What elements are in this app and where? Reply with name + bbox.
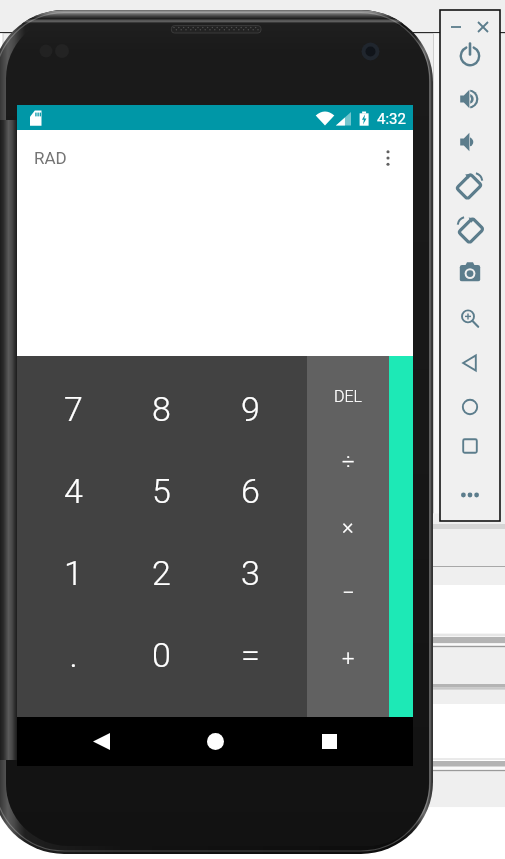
button[interactable]: Power [454,39,486,71]
staticText: 7 [64,389,83,429]
staticText: DEL [334,387,363,406]
staticText: . [69,635,78,675]
button[interactable]: Screenshot [454,256,486,288]
button[interactable]: 7 [29,368,117,450]
button[interactable]: 9 [206,368,295,450]
button[interactable]: Back [454,347,486,379]
button[interactable]: 3 [206,532,295,614]
button[interactable]: = [206,614,295,696]
staticText: RAD [34,148,67,168]
staticText: − [342,580,355,606]
staticText: 1 [64,553,83,593]
staticText: 9 [241,389,260,429]
staticText: 6 [241,471,260,511]
staticText: 2 [152,553,171,593]
button[interactable]: Zoom [454,303,486,335]
button[interactable]: More [454,479,486,511]
button[interactable]: 2 [117,532,206,614]
staticText: 8 [152,389,171,429]
button[interactable]: Overview [454,430,486,462]
staticText: 4:32 [377,110,406,128]
button[interactable]: More options [373,143,403,173]
button[interactable]: Volume down [454,126,486,158]
staticText: ÷ [342,449,355,475]
staticText: × [342,514,354,540]
button[interactable]: 0 [117,614,206,696]
button[interactable]: − [307,560,389,626]
button[interactable]: Home [185,717,245,766]
button[interactable]: 8 [117,368,206,450]
button[interactable]: Close [472,16,494,38]
button[interactable]: Rotate right [454,213,486,245]
button[interactable]: × [307,494,389,560]
staticText: 4 [64,471,83,511]
button[interactable]: Back [71,717,131,766]
button[interactable]: + [307,626,389,692]
button[interactable]: ÷ [307,429,389,494]
button[interactable]: DEL [307,364,389,429]
button[interactable]: . [29,614,117,696]
staticText: 0 [152,635,171,675]
button[interactable]: Home [454,391,486,423]
staticText: 5 [152,471,171,511]
button[interactable]: Recents [299,717,359,766]
button[interactable]: Minimize [446,16,468,38]
button[interactable]: 1 [29,532,117,614]
button[interactable]: Volume up [454,83,486,115]
staticText: = [241,635,260,675]
button[interactable]: 6 [206,450,295,532]
staticText: 3 [241,553,260,593]
button[interactable]: Rotate left [454,169,486,201]
button[interactable]: 4 [29,450,117,532]
button[interactable]: 5 [117,450,206,532]
staticText: + [342,646,355,672]
